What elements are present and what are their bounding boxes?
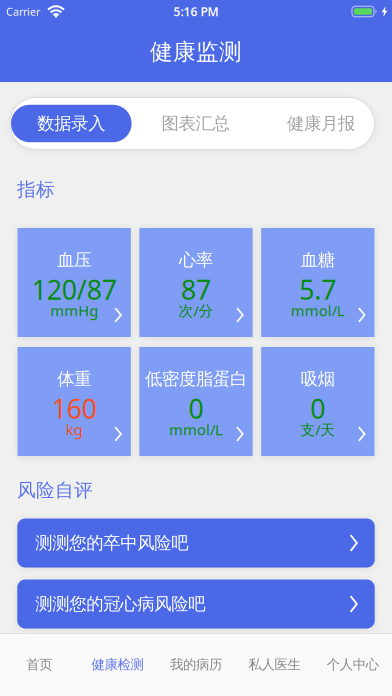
staticText: 私人医生 — [248, 656, 300, 673]
button[interactable]: 血糖 — [261, 228, 374, 337]
button[interactable]: 健康月报 — [260, 97, 381, 149]
staticText: 测测您的冠心病风险吧 — [35, 593, 205, 615]
staticText: 健康监测 — [150, 38, 242, 66]
button[interactable]: 测测您的冠心病风险吧 — [17, 579, 375, 628]
button[interactable]: 图表汇总 — [135, 97, 256, 149]
staticText: 体重 — [57, 368, 91, 390]
button[interactable]: 私人医生 — [235, 633, 314, 696]
staticText: 指标 — [17, 178, 55, 201]
staticText: mmol/L — [169, 420, 223, 439]
staticText: 0 — [310, 391, 325, 426]
button[interactable]: 我的病历 — [157, 633, 235, 696]
button[interactable]: 吸烟 — [261, 347, 374, 456]
staticText: kg — [66, 420, 83, 439]
staticText: 图表汇总 — [161, 113, 229, 134]
staticText: 160 — [52, 391, 97, 426]
staticText: 5:16 PM — [173, 3, 218, 19]
button[interactable]: 个人中心 — [314, 633, 392, 696]
staticText: 87 — [181, 272, 211, 307]
staticText: 个人中心 — [327, 656, 379, 673]
button[interactable]: 体重 — [18, 347, 131, 456]
button[interactable]: 首页 — [0, 633, 78, 696]
staticText: 0 — [188, 391, 203, 426]
staticText: 健康月报 — [287, 113, 355, 134]
staticText: 健康检测 — [92, 656, 144, 673]
button[interactable]: 测测您的卒中风险吧 — [17, 518, 375, 567]
staticText: 心率 — [179, 249, 213, 271]
button[interactable]: 血压 — [18, 228, 131, 337]
staticText: 吸烟 — [301, 368, 335, 390]
button[interactable]: 心率 — [139, 228, 253, 337]
staticText: 血糖 — [301, 249, 335, 271]
staticText: mmol/L — [291, 301, 345, 320]
staticText: 120/87 — [32, 272, 117, 307]
staticText: 测测您的卒中风险吧 — [35, 532, 188, 554]
button[interactable]: 健康检测 — [78, 633, 157, 696]
staticText: Carrier — [6, 4, 40, 19]
button[interactable]: 数据录入 — [11, 105, 132, 142]
button[interactable]: 低密度脂蛋白 — [139, 347, 253, 456]
staticText: 5.7 — [299, 272, 336, 307]
staticText: 血压 — [57, 249, 91, 271]
staticText: mmHg — [50, 301, 98, 320]
staticText: 次/分 — [178, 301, 213, 320]
staticText: 支/天 — [300, 420, 335, 439]
staticText: 首页 — [26, 656, 52, 673]
staticText: 数据录入 — [37, 113, 105, 134]
staticText: 低密度脂蛋白 — [145, 368, 247, 390]
staticText: 我的病历 — [170, 656, 222, 673]
staticText: 风险自评 — [17, 479, 93, 502]
